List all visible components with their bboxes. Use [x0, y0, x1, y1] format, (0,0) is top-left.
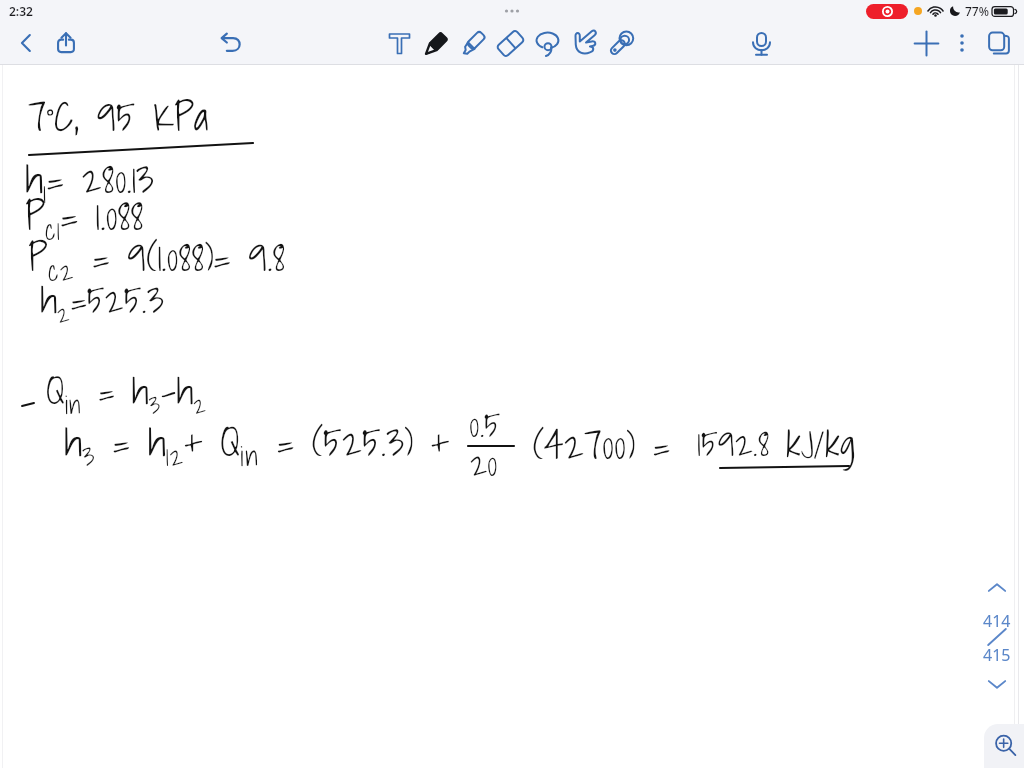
staticText: 77% — [965, 3, 989, 19]
button[interactable]: Next page — [975, 664, 1019, 704]
button[interactable]: Laser pointer — [603, 22, 640, 64]
button[interactable]: Undo — [212, 22, 250, 64]
button[interactable]: Eraser — [492, 22, 529, 64]
button[interactable]: Record audio — [742, 22, 780, 64]
button[interactable]: Pen tool — [418, 22, 455, 64]
button[interactable]: Add page — [906, 22, 946, 64]
button[interactable]: Highlighter — [455, 22, 492, 64]
button[interactable]: Hand — [566, 22, 603, 64]
staticText: 2:32 — [9, 3, 33, 19]
button[interactable]: Back — [7, 22, 45, 64]
button[interactable]: Lasso — [529, 22, 566, 64]
button[interactable]: Zoom in — [984, 724, 1024, 768]
button[interactable]: Pages — [978, 22, 1020, 64]
button[interactable]: More options — [946, 22, 978, 64]
button[interactable]: 414 — [975, 608, 1019, 662]
button[interactable]: Previous page — [975, 568, 1019, 608]
button[interactable]: Share — [45, 22, 87, 64]
button[interactable]: Text tool — [381, 22, 418, 64]
staticText: 415 — [983, 644, 1011, 666]
staticText: 414 — [983, 610, 1011, 632]
